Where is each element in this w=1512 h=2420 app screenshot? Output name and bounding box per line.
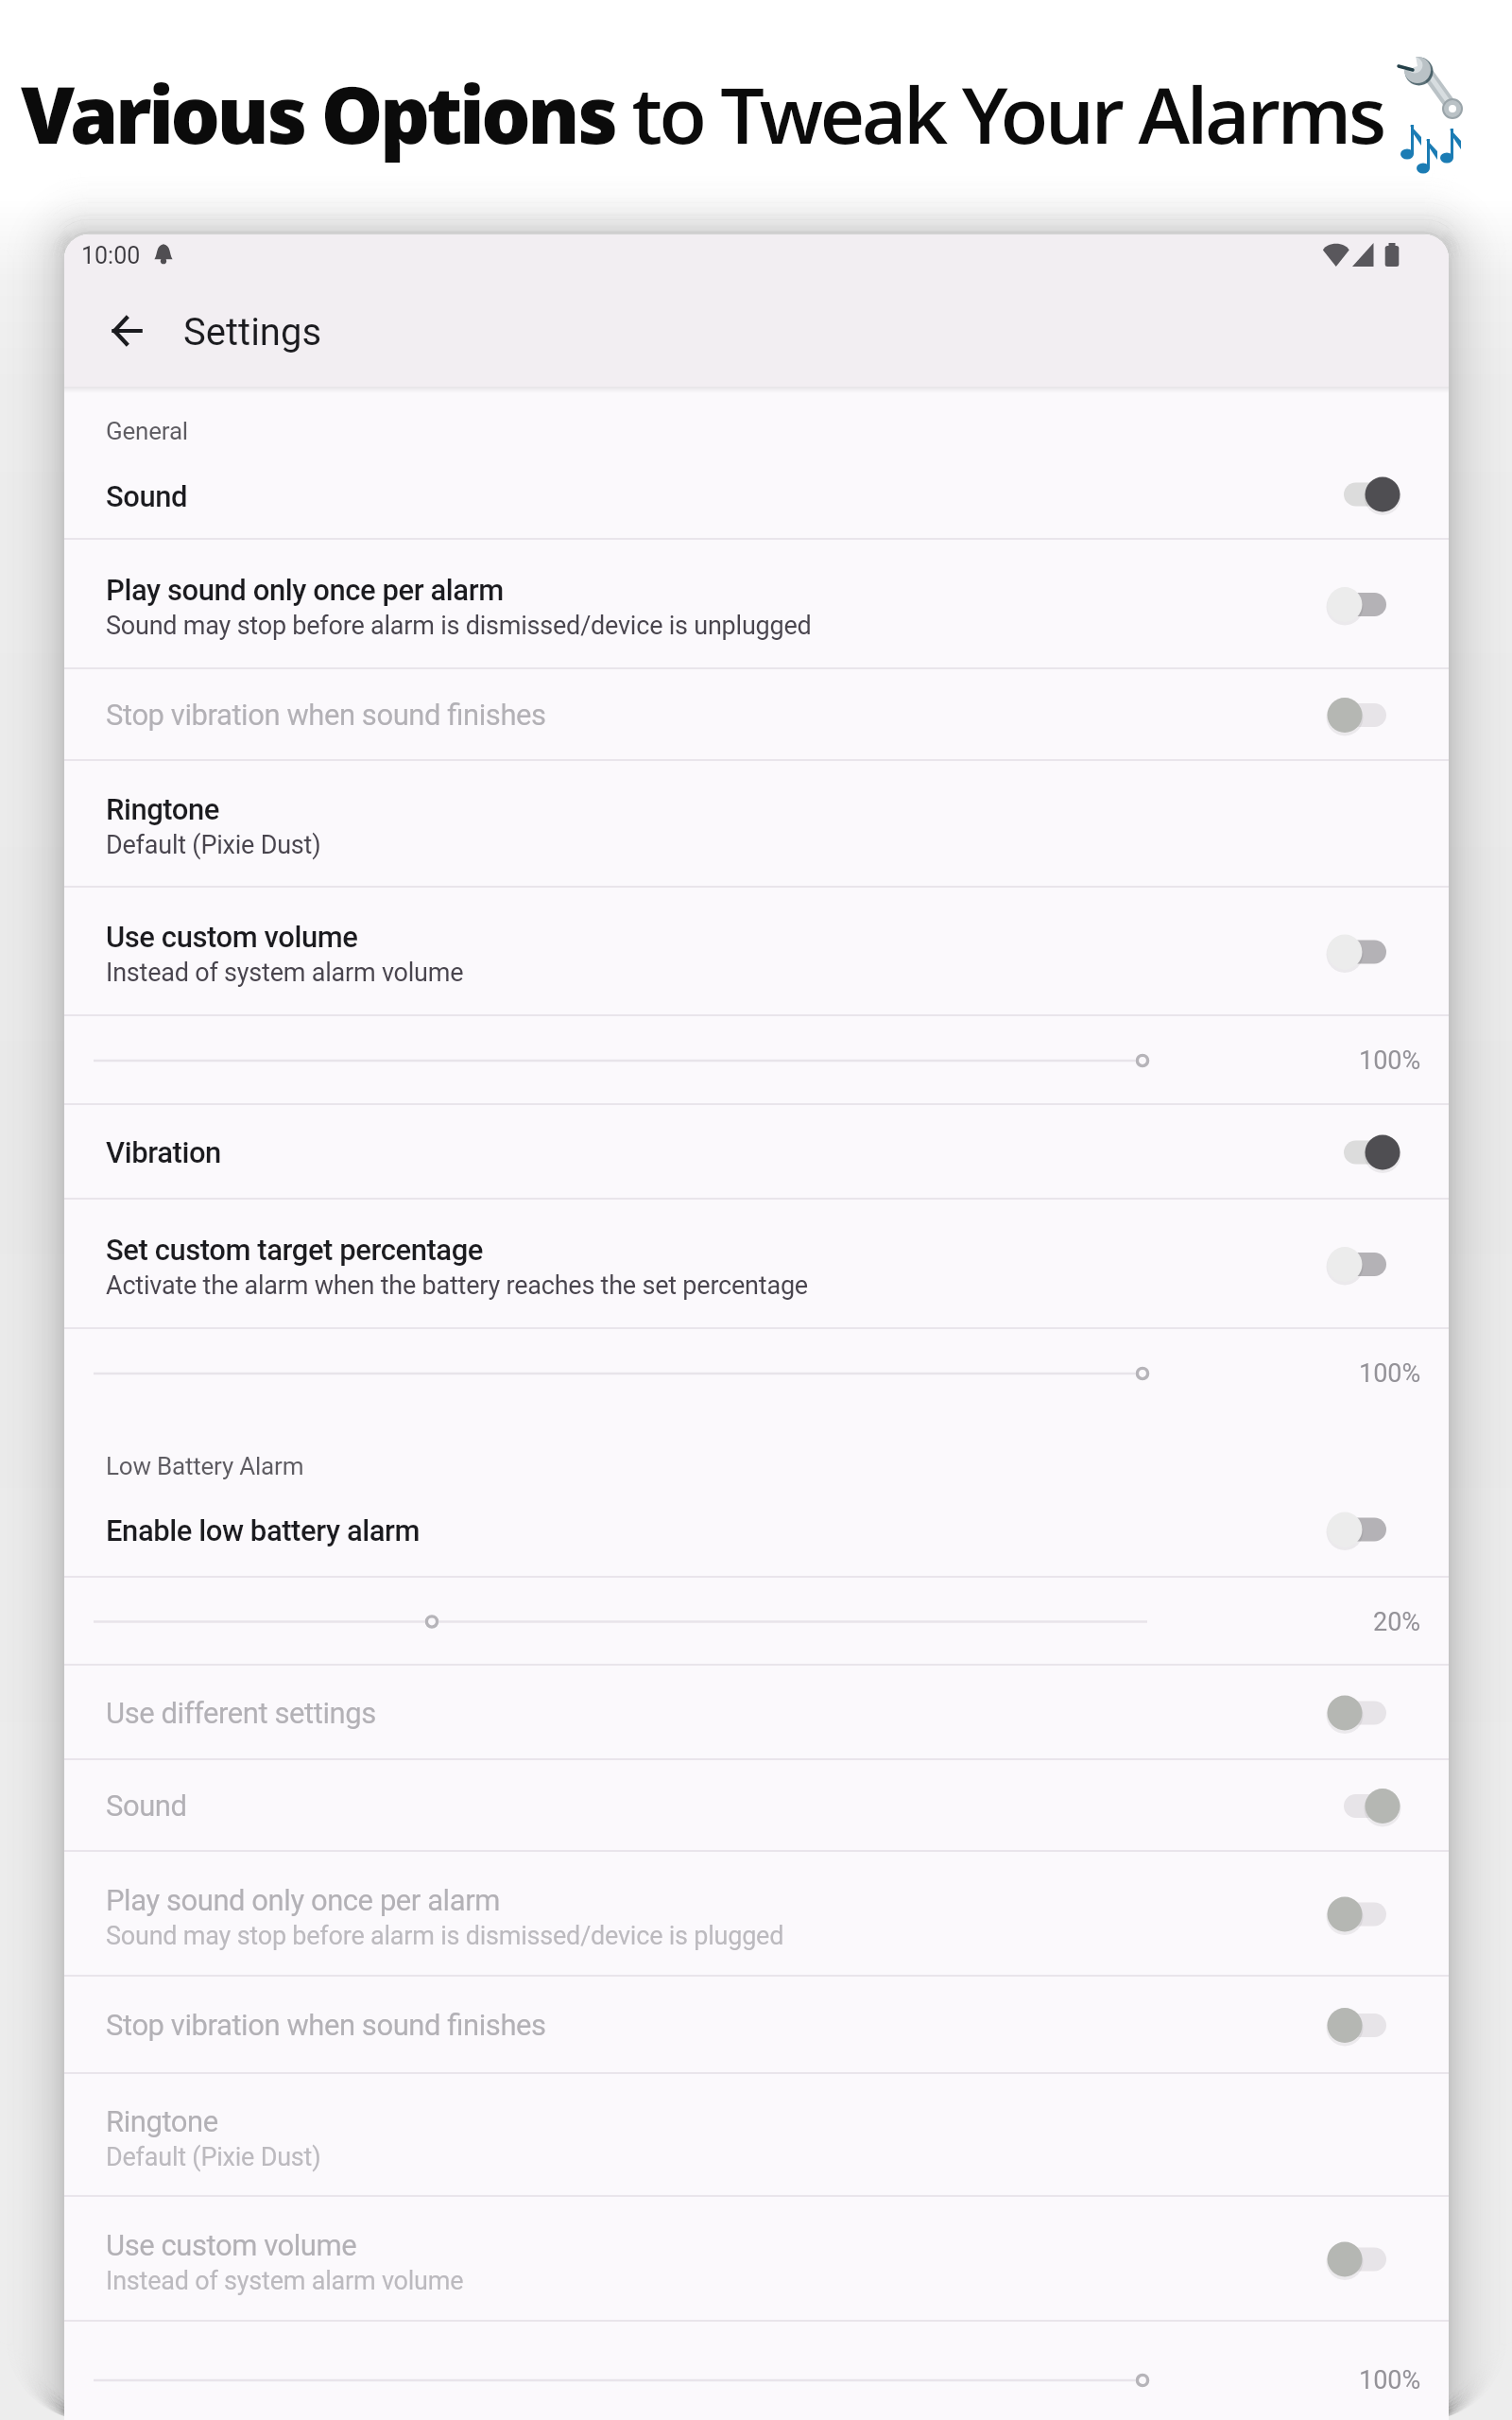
button[interactable]: Vibration: [64, 1105, 1449, 1200]
staticText: Low Battery Alarm: [106, 1452, 304, 1480]
staticText: Use different settings: [106, 1696, 376, 1730]
button[interactable]: Enable low battery alarm: [1306, 1418, 1429, 1578]
staticText: 100%: [1359, 1046, 1421, 1076]
button[interactable]: Play sound only once per alarm: [1306, 1852, 1429, 1977]
staticText: Default (Pixie Dust): [106, 830, 321, 860]
staticText: Sound may stop before alarm is dismissed…: [106, 611, 812, 641]
button[interactable]: Play sound only once per alarm: [64, 1852, 1449, 1977]
staticText: Sound: [106, 479, 188, 513]
staticText: Sound may stop before alarm is dismissed…: [106, 1921, 784, 1951]
button[interactable]: Set custom target percentage: [1306, 1200, 1429, 1329]
button[interactable]: 100%: [64, 1329, 1449, 1418]
button[interactable]: Ringtone: [64, 761, 1449, 888]
button[interactable]: Stop vibration when sound finishes: [1306, 669, 1429, 761]
button[interactable]: Play sound only once per alarm: [64, 540, 1449, 669]
button[interactable]: Sound: [64, 1760, 1449, 1852]
button[interactable]: Use custom volume: [64, 2197, 1449, 2322]
button[interactable]: Use different settings: [1306, 1666, 1429, 1760]
staticText: Activate the alarm when the battery reac…: [106, 1270, 808, 1301]
button[interactable]: General: [64, 387, 1449, 540]
button[interactable]: Sound: [1306, 1760, 1429, 1852]
staticText: 20%: [1373, 1607, 1421, 1637]
staticText: Set custom target percentage: [106, 1233, 484, 1267]
staticText: Play sound only once per alarm: [106, 573, 504, 607]
button[interactable]: Sound: [1306, 387, 1429, 540]
staticText: Play sound only once per alarm: [106, 1883, 500, 1917]
button[interactable]: Use different settings: [64, 1666, 1449, 1760]
staticText: Ringtone: [106, 792, 220, 826]
button[interactable]: Use custom volume: [1306, 888, 1429, 1016]
button[interactable]: Use custom volume: [1306, 2197, 1429, 2322]
staticText: Instead of system alarm volume: [106, 958, 464, 988]
button[interactable]: Low Battery Alarm: [64, 1418, 1449, 1578]
button[interactable]: Use custom volume: [64, 888, 1449, 1016]
staticText: Use custom volume: [106, 920, 358, 954]
button[interactable]: 100%: [64, 2322, 1449, 2420]
staticText: Stop vibration when sound finishes: [106, 698, 546, 732]
button[interactable]: Back: [93, 302, 163, 359]
staticText: General: [106, 417, 188, 445]
button[interactable]: Stop vibration when sound finishes: [64, 669, 1449, 761]
staticText: Settings: [183, 310, 322, 354]
staticText: 10:00: [81, 242, 141, 269]
button[interactable]: Vibration: [1306, 1105, 1429, 1200]
button[interactable]: Ringtone: [64, 2074, 1449, 2197]
staticText: Sound: [106, 1789, 187, 1823]
button[interactable]: Set custom target percentage: [64, 1200, 1449, 1329]
button[interactable]: Stop vibration when sound finishes: [64, 1977, 1449, 2074]
staticText: Ringtone: [106, 2104, 218, 2138]
staticText: Use custom volume: [106, 2228, 357, 2262]
button[interactable]: 100%: [64, 1016, 1449, 1105]
button[interactable]: Play sound only once per alarm: [1306, 540, 1429, 669]
button[interactable]: Stop vibration when sound finishes: [1306, 1977, 1429, 2074]
button[interactable]: 20%: [64, 1578, 1449, 1666]
staticText: Enable low battery alarm: [106, 1513, 421, 1547]
staticText: 100%: [1359, 2365, 1421, 2395]
staticText: 100%: [1359, 1358, 1421, 1389]
staticText: Various Options to Tweak Your Alarms: [21, 60, 1383, 166]
staticText: Default (Pixie Dust): [106, 2142, 321, 2172]
staticText: Stop vibration when sound finishes: [106, 2008, 546, 2042]
staticText: Vibration: [106, 1135, 221, 1169]
staticText: Instead of system alarm volume: [106, 2266, 464, 2296]
